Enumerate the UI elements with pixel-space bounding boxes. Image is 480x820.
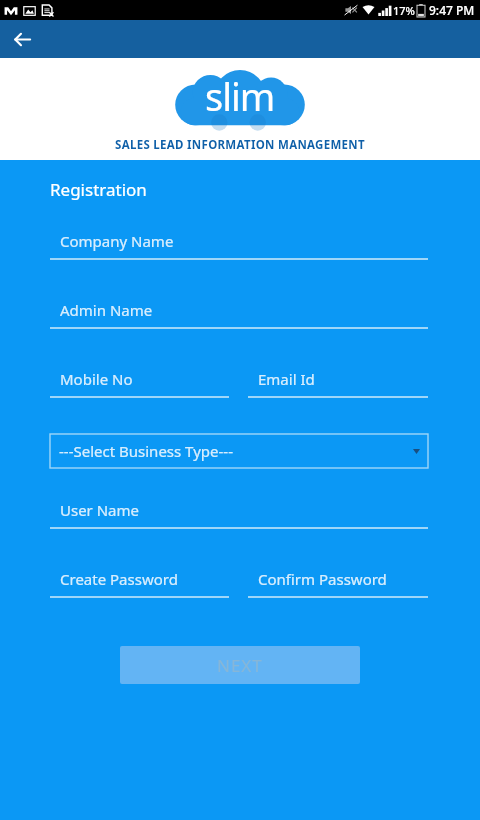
button[interactable]: User Name: [50, 500, 428, 529]
staticText: Confirm Password: [258, 569, 387, 589]
button[interactable]: Confirm Password: [248, 569, 428, 598]
staticText: Mobile No: [60, 369, 133, 389]
staticText: ---Select Business Type---: [59, 441, 233, 461]
staticText: Registration: [50, 178, 147, 201]
staticText: Admin Name: [60, 300, 153, 320]
button[interactable]: Company Name: [50, 231, 428, 260]
button[interactable]: Mobile No: [50, 369, 229, 398]
button[interactable]: Back: [0, 20, 44, 58]
staticText: Create Password: [60, 569, 178, 589]
button[interactable]: ---Select Business Type---: [50, 434, 428, 468]
staticText: User Name: [60, 500, 140, 520]
button[interactable]: Email Id: [248, 369, 428, 398]
button[interactable]: Create Password: [50, 569, 229, 598]
staticText: SALES LEAD INFORMATION MANAGEMENT: [115, 137, 365, 153]
staticText: 9:47 PM: [429, 2, 475, 18]
button[interactable]: Admin Name: [50, 300, 428, 329]
staticText: 17%: [393, 3, 415, 18]
staticText: Email Id: [258, 369, 315, 389]
staticText: NEXT: [217, 654, 263, 677]
button[interactable]: NEXT: [120, 646, 360, 684]
staticText: Company Name: [60, 231, 174, 251]
staticText: slim: [205, 70, 275, 122]
